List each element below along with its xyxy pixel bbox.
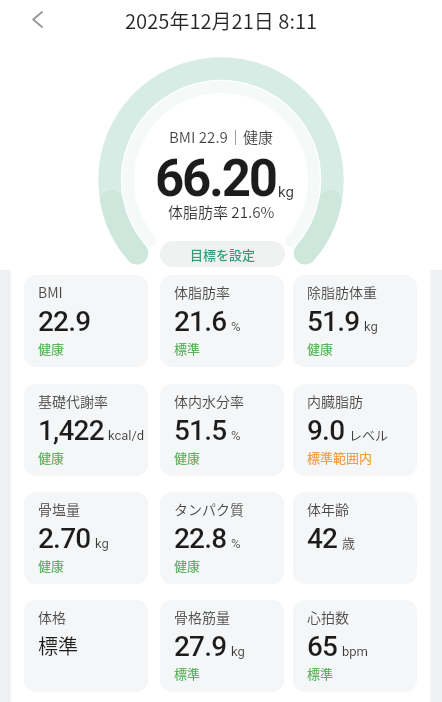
button[interactable]: 骨塩量 <box>24 492 148 584</box>
staticText: 心拍数 <box>307 607 349 627</box>
staticText: kg <box>231 644 245 659</box>
button[interactable]: 体脂肪率 <box>160 275 284 367</box>
staticText: 体内水分率 <box>174 391 244 411</box>
staticText: 内臓脂肪 <box>307 391 363 411</box>
button[interactable] <box>22 4 52 34</box>
staticText: 体年齢 <box>307 499 349 519</box>
staticText: 51.9 <box>307 305 360 338</box>
button[interactable]: 体格 <box>24 600 148 692</box>
staticText: 歳 <box>342 533 356 552</box>
staticText: bpm <box>342 644 368 659</box>
staticText: 65 <box>307 630 338 663</box>
staticText: BMI <box>38 282 63 302</box>
staticText: kg <box>278 183 294 201</box>
button[interactable]: 基礎代謝率 <box>24 384 148 476</box>
button[interactable]: BMI <box>24 275 148 367</box>
button[interactable]: 除脂肪体重 <box>293 275 417 367</box>
staticText: 標準 <box>307 664 334 683</box>
staticText: 標準 <box>174 664 201 683</box>
staticText: 42 <box>307 522 338 555</box>
button[interactable]: 体内水分率 <box>160 384 284 476</box>
staticText: タンパク質 <box>174 499 244 519</box>
staticText: 1,422 <box>38 414 104 447</box>
staticText: 体脂肪率 <box>174 282 230 302</box>
staticText: 21.6 <box>174 305 227 338</box>
staticText: 骨格筋量 <box>174 607 230 627</box>
staticText: % <box>231 428 241 443</box>
staticText: BMI 22.9｜健康 <box>169 126 273 148</box>
staticText: 体脂肪率 21.6% <box>168 201 275 223</box>
staticText: 標準 <box>174 339 201 358</box>
staticText: 除脂肪体重 <box>307 282 377 302</box>
staticText: % <box>231 536 241 551</box>
staticText: 9.0 <box>307 414 345 447</box>
staticText: 2025年12月21日 8:11 <box>125 6 318 35</box>
staticText: kcal/d <box>108 428 145 443</box>
staticText: 66.20 <box>155 149 276 209</box>
staticText: 2.70 <box>38 522 91 555</box>
staticText: 27.9 <box>174 630 227 663</box>
staticText: 51.5 <box>174 414 227 447</box>
staticText: 標準範囲内 <box>307 448 373 467</box>
staticText: kg <box>364 319 378 334</box>
button[interactable]: 心拍数 <box>293 600 417 692</box>
staticText: 健康 <box>174 556 201 575</box>
staticText: 基礎代謝率 <box>38 391 108 411</box>
button[interactable]: 体年齢 <box>293 492 417 584</box>
staticText: 22.8 <box>174 522 227 555</box>
staticText: 体格 <box>38 607 66 627</box>
staticText: % <box>231 319 241 334</box>
button[interactable]: 骨格筋量 <box>160 600 284 692</box>
button[interactable]: タンパク質 <box>160 492 284 584</box>
staticText: kg <box>95 536 109 551</box>
staticText: 標準 <box>38 631 78 660</box>
staticText: 健康 <box>38 448 65 467</box>
staticText: 目標を設定 <box>190 245 256 264</box>
staticText: 22.9 <box>38 305 91 338</box>
staticText: 健康 <box>38 556 65 575</box>
staticText: レベル <box>349 425 389 444</box>
staticText: 健康 <box>307 339 334 358</box>
staticText: 健康 <box>174 448 201 467</box>
button[interactable]: 内臓脂肪 <box>293 384 417 476</box>
staticText: 健康 <box>38 339 65 358</box>
staticText: 骨塩量 <box>38 499 80 519</box>
button[interactable]: 目標を設定 <box>160 241 285 267</box>
